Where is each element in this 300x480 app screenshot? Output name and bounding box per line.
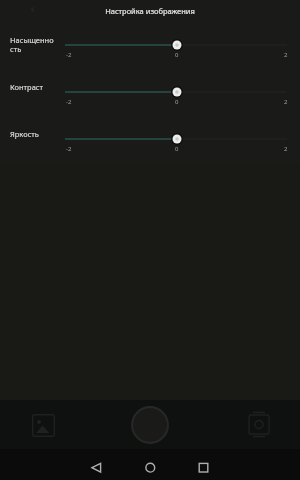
button[interactable]: Back <box>82 453 112 480</box>
staticText: 0 <box>175 51 179 59</box>
staticText: -2 <box>66 145 72 153</box>
staticText: 0 <box>175 145 179 153</box>
button[interactable]: Home <box>136 453 166 480</box>
staticText: 2 <box>284 51 288 59</box>
staticText: -2 <box>66 51 72 59</box>
button[interactable]: Контраст <box>0 69 300 115</box>
staticText: 2 <box>284 145 288 153</box>
staticText: 0 <box>175 98 179 106</box>
staticText: Насыщенность <box>10 35 55 54</box>
staticText: 2 <box>284 98 288 106</box>
staticText: -2 <box>66 98 72 106</box>
button[interactable]: Take photo <box>129 404 171 446</box>
button[interactable]: Gallery <box>32 414 55 437</box>
staticText: Яркость <box>10 129 55 139</box>
staticText: Контраст <box>10 82 55 92</box>
button[interactable]: Насыщенность <box>0 22 300 68</box>
button[interactable]: Recent apps <box>189 453 219 480</box>
button[interactable]: Switch camera <box>248 411 270 438</box>
button[interactable]: Яркость <box>0 116 300 162</box>
staticText: Настройка изображения <box>105 6 195 16</box>
